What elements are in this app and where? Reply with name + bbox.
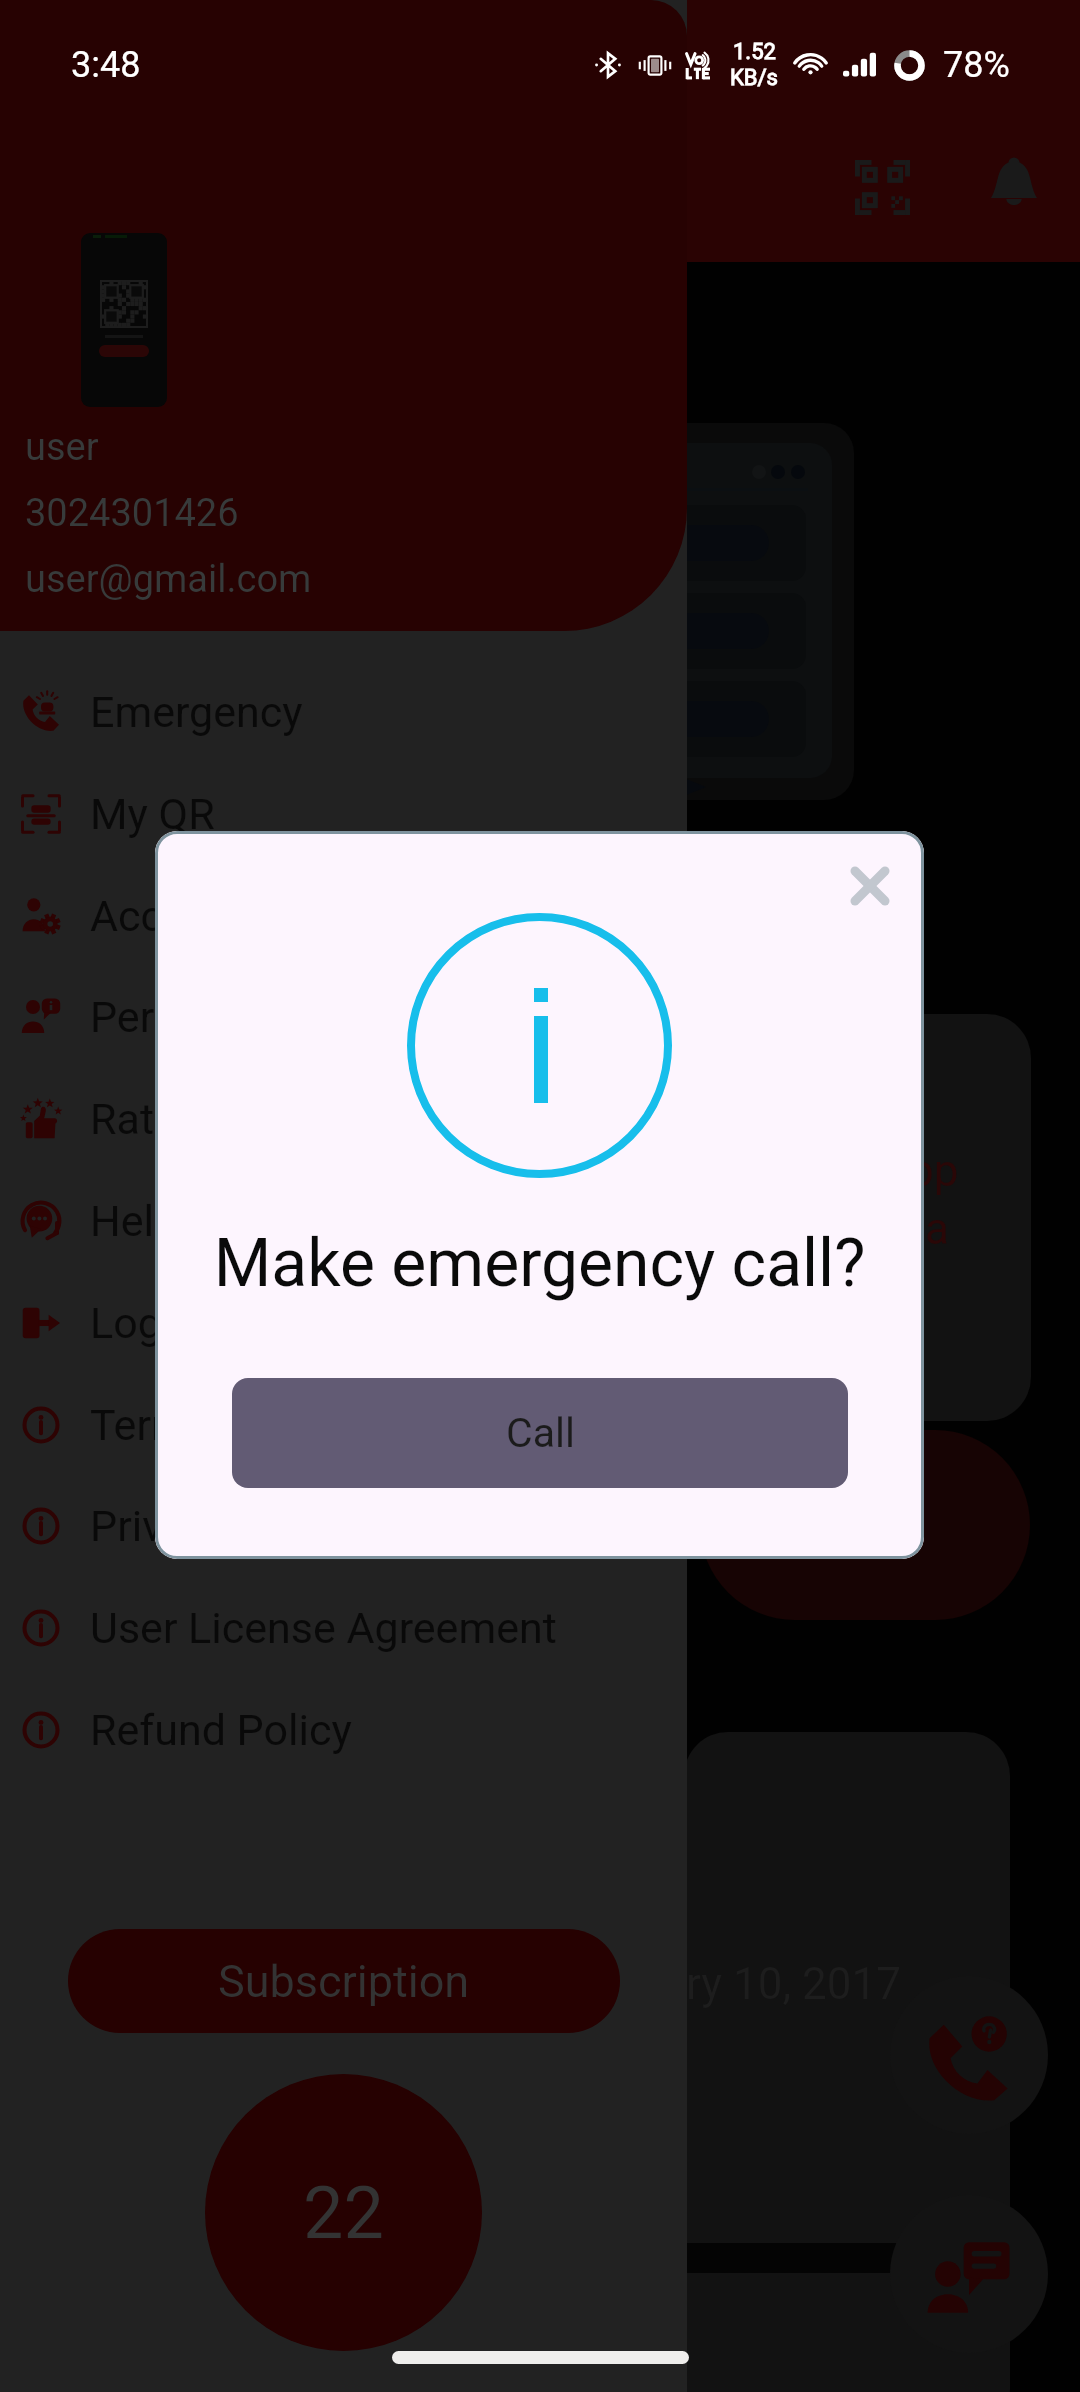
staticText: 78% — [943, 44, 1010, 86]
button[interactable]: Rate Us — [0, 1069, 687, 1169]
staticText: User License Agreement — [90, 1603, 557, 1653]
staticText: My QR — [90, 789, 215, 839]
staticText: Call — [506, 1409, 575, 1457]
staticText: Help & Support — [90, 1196, 378, 1246]
button[interactable]: User License Agreement — [0, 1578, 687, 1678]
staticText: Rate Us — [90, 1094, 238, 1144]
button[interactable]: 22 — [205, 2074, 482, 2351]
staticText: Terms & Conditions — [90, 1400, 465, 1450]
button[interactable]: Subscription — [68, 1929, 620, 2033]
button[interactable]: Refund Policy — [0, 1680, 687, 1780]
button[interactable]: Close — [818, 834, 922, 938]
staticText: Refund Policy — [90, 1705, 352, 1755]
button[interactable]: Call support — [890, 1976, 1048, 2134]
staticText: Logout — [90, 1298, 225, 1348]
button[interactable]: Notifications — [989, 158, 1039, 208]
staticText: ry 10, 2017 — [686, 1958, 901, 2010]
staticText: 1.52 — [733, 39, 776, 65]
staticText: Personal Information — [90, 992, 493, 1042]
button[interactable]: Account Settings — [0, 866, 687, 966]
staticText: Emergency — [90, 687, 303, 737]
button[interactable]: Personal Information — [0, 967, 687, 1067]
button[interactable]: Scan QR — [854, 159, 910, 215]
button[interactable]: Help & Support — [0, 1171, 687, 1271]
staticText: 3024301426 — [25, 491, 239, 536]
button[interactable]: Call — [232, 1378, 848, 1488]
button[interactable]: Terms & Conditions — [0, 1375, 687, 1475]
button[interactable]: Privacy Policy — [0, 1476, 687, 1576]
button[interactable]: Emergency — [0, 662, 687, 762]
staticText: app — [885, 1145, 959, 1197]
staticText: user — [25, 425, 99, 470]
button[interactable]: Logout — [0, 1273, 687, 1373]
staticText: a — [925, 1203, 949, 1255]
button[interactable]: My QR — [0, 764, 687, 864]
staticText: Subscription — [218, 1955, 470, 2008]
staticText: user@gmail.com — [25, 557, 312, 602]
staticText: 3:48 — [71, 44, 141, 86]
staticText: Account Settings — [90, 891, 417, 941]
staticText: Make emergency call? — [155, 1225, 924, 1302]
button[interactable]: Chat support — [890, 2195, 1048, 2353]
staticText: Privacy Policy — [90, 1501, 355, 1551]
staticText: KB/s — [730, 65, 778, 91]
staticText: 22 — [303, 2171, 384, 2255]
